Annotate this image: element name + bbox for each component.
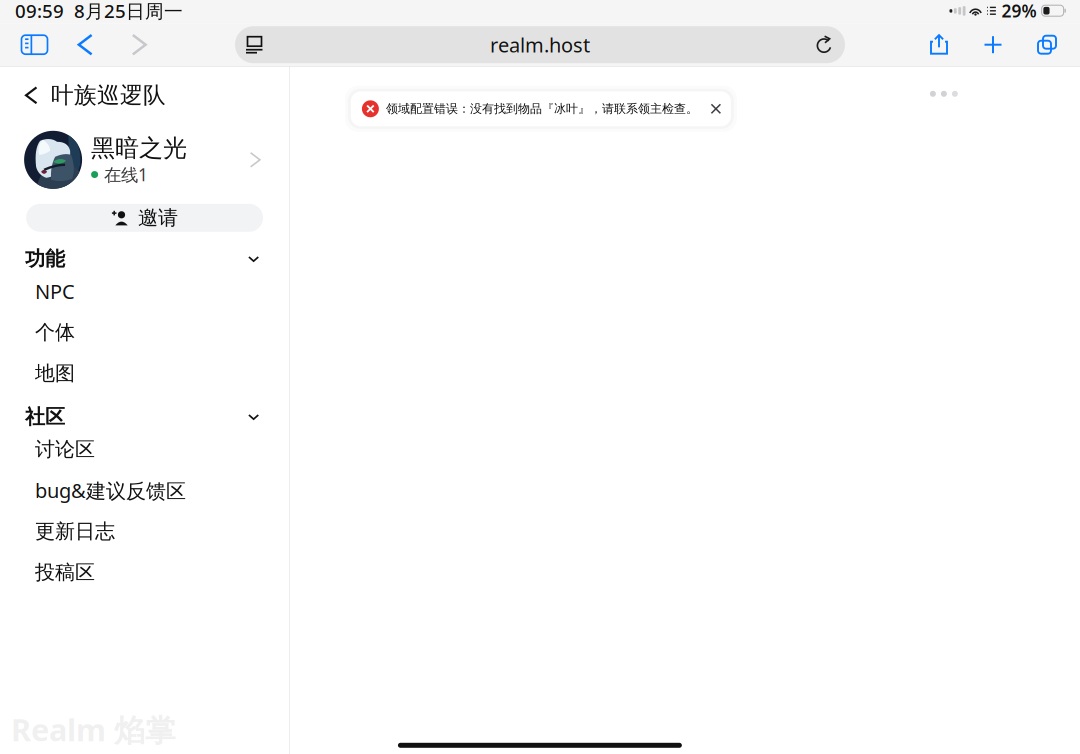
staticText: 邀请 bbox=[138, 205, 178, 230]
button[interactable]: bug&建议反馈区 bbox=[0, 470, 289, 511]
button[interactable]: realm.host bbox=[235, 26, 845, 63]
staticText: 投稿区 bbox=[35, 560, 95, 585]
button[interactable]: 个体 bbox=[0, 312, 289, 353]
staticText: 黑暗之光 bbox=[91, 134, 187, 163]
button[interactable]: Dismiss bbox=[708, 101, 724, 117]
button[interactable]: Show sidebar bbox=[11, 24, 58, 65]
staticText: 09:59 bbox=[15, 0, 64, 23]
staticText: 领域配置错误：没有找到物品『冰叶』，请联系领主检查。 bbox=[386, 101, 698, 116]
staticText: 更新日志 bbox=[35, 519, 115, 544]
button[interactable]: 邀请 bbox=[26, 204, 263, 232]
staticText: 社区 bbox=[25, 404, 65, 429]
button[interactable]: Forward bbox=[112, 24, 166, 65]
button[interactable]: Show tabs bbox=[1020, 24, 1074, 65]
button[interactable]: 地图 bbox=[0, 353, 289, 394]
staticText: 在线1 bbox=[104, 163, 148, 186]
staticText: NPC bbox=[35, 278, 75, 305]
staticText: 29% bbox=[1001, 0, 1036, 22]
staticText: 功能 bbox=[25, 246, 65, 271]
button[interactable]: 讨论区 bbox=[0, 429, 289, 470]
staticText: 叶族巡逻队 bbox=[51, 81, 166, 109]
button[interactable]: 功能 bbox=[0, 247, 289, 271]
button[interactable]: 投稿区 bbox=[0, 552, 289, 593]
button[interactable]: NPC bbox=[0, 271, 289, 312]
button[interactable]: Back bbox=[58, 24, 112, 65]
button[interactable]: 更新日志 bbox=[0, 511, 289, 552]
button[interactable]: New tab bbox=[966, 24, 1020, 65]
staticText: 8月25日周一 bbox=[64, 0, 183, 23]
button[interactable]: Share bbox=[912, 24, 966, 65]
staticText: 个体 bbox=[35, 320, 75, 345]
button[interactable]: 社区 bbox=[0, 405, 289, 429]
staticText: Realm 焰掌 bbox=[11, 709, 176, 750]
staticText: bug&建议反馈区 bbox=[35, 477, 186, 504]
button[interactable]: 黑暗之光 bbox=[0, 125, 289, 195]
staticText: 地图 bbox=[35, 361, 75, 386]
button[interactable]: Back bbox=[11, 73, 51, 118]
staticText: 讨论区 bbox=[35, 437, 95, 462]
staticText: realm.host bbox=[490, 31, 590, 58]
